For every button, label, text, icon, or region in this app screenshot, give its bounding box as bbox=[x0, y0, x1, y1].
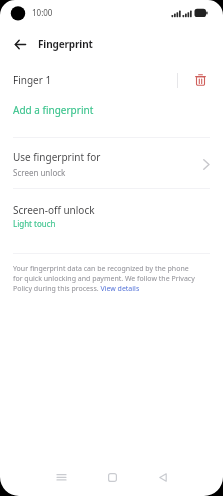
staticText: Screen-off unlock bbox=[13, 203, 95, 217]
staticText: Add a fingerprint bbox=[13, 103, 94, 117]
button[interactable]: Finger 1 bbox=[0, 62, 223, 98]
button[interactable] bbox=[98, 463, 126, 491]
staticText: Light touch bbox=[13, 218, 56, 229]
staticText: Use fingerprint for bbox=[13, 150, 101, 164]
button[interactable] bbox=[47, 463, 75, 491]
staticText: 10:00 bbox=[32, 7, 53, 18]
button[interactable] bbox=[3, 27, 37, 61]
staticText: Fingerprint bbox=[38, 37, 93, 51]
staticText: Your fingerprint data can be recognized … bbox=[13, 264, 195, 294]
staticText: Screen unlock bbox=[13, 167, 66, 178]
staticText: Finger 1 bbox=[13, 73, 52, 87]
button[interactable] bbox=[194, 74, 206, 86]
button[interactable]: Use fingerprint for bbox=[0, 150, 223, 178]
button[interactable]: Screen-off unlock bbox=[0, 203, 223, 229]
button[interactable]: Add a fingerprint bbox=[0, 98, 223, 124]
button[interactable] bbox=[149, 463, 177, 491]
